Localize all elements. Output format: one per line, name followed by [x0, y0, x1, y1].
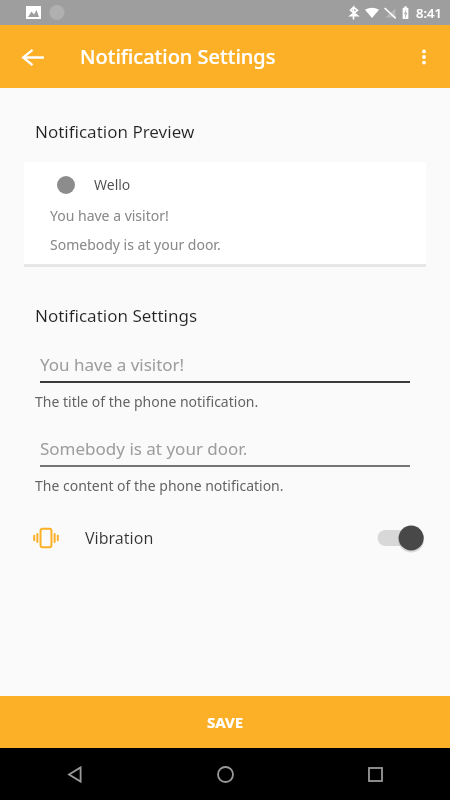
button[interactable]: Back: [0, 748, 150, 800]
staticText: Wello: [94, 175, 131, 194]
button[interactable]: More options: [401, 34, 447, 80]
staticText: Vibration: [85, 527, 154, 549]
button[interactable]: Recent apps: [300, 748, 450, 800]
button[interactable]: You have a visitor!: [40, 353, 410, 383]
staticText: Notification Settings: [35, 304, 198, 327]
staticText: Notification Settings: [80, 43, 276, 70]
staticText: 8:41: [416, 4, 442, 22]
staticText: The title of the phone notification.: [35, 392, 259, 411]
button[interactable]: Wello: [24, 162, 426, 264]
staticText: SAVE: [207, 712, 244, 732]
staticText: You have a visitor!: [50, 206, 169, 225]
staticText: Somebody is at your door.: [50, 235, 221, 254]
staticText: Notification Preview: [35, 120, 195, 143]
button[interactable]: Home: [150, 748, 300, 800]
staticText: Somebody is at your door.: [40, 437, 248, 460]
button[interactable]: Back: [10, 34, 56, 80]
button[interactable]: Vibration: [0, 511, 450, 565]
button[interactable]: Vibration toggle: [372, 520, 428, 556]
button[interactable]: Somebody is at your door.: [40, 437, 410, 467]
staticText: You have a visitor!: [40, 353, 185, 376]
staticText: The content of the phone notification.: [35, 476, 284, 495]
button[interactable]: SAVE: [0, 696, 450, 748]
